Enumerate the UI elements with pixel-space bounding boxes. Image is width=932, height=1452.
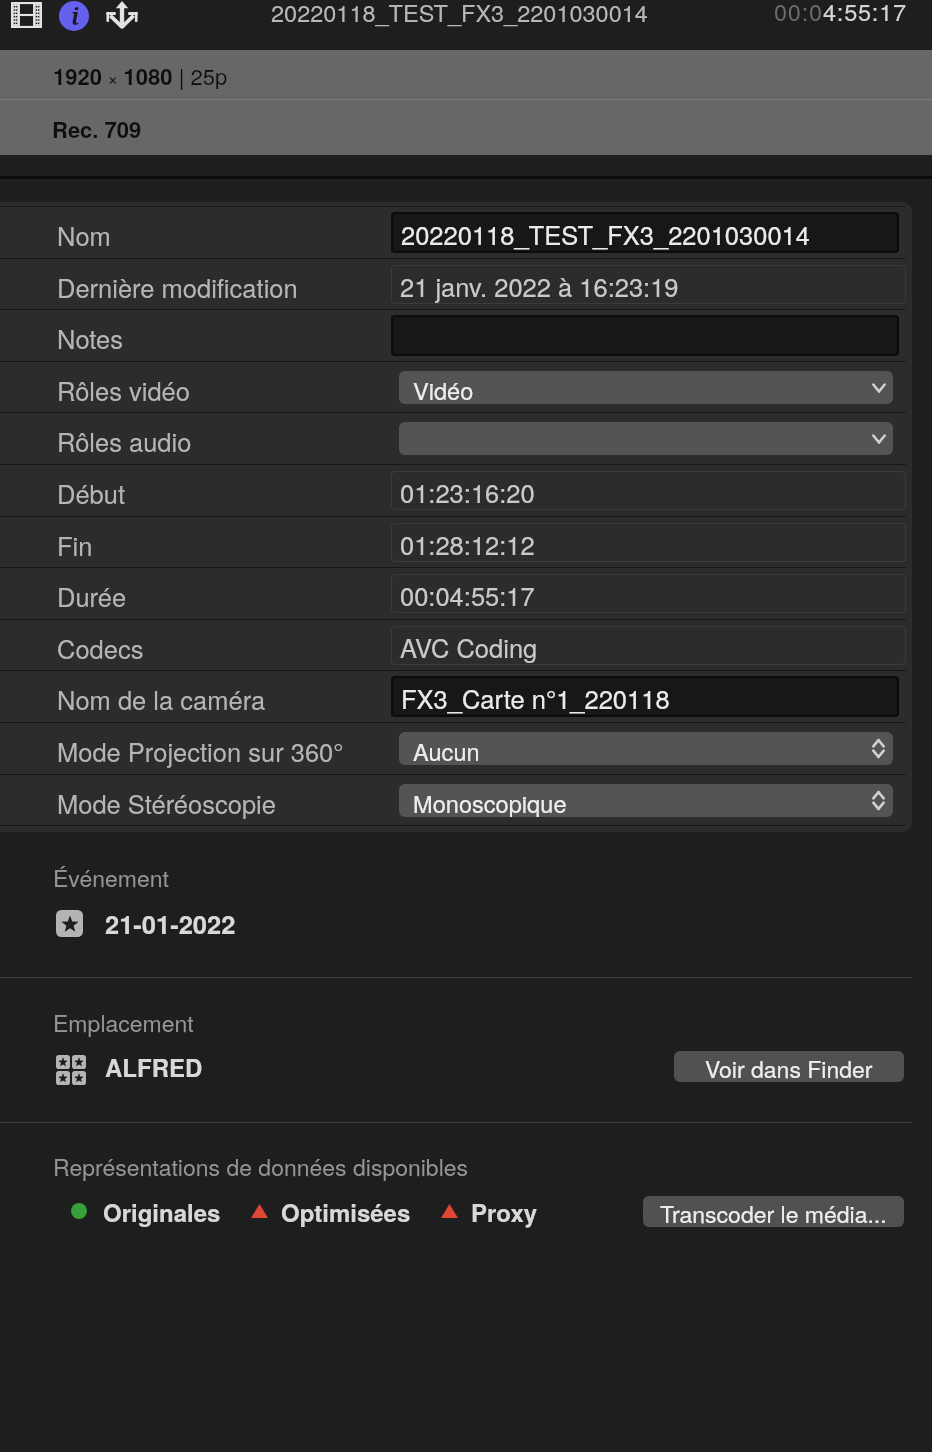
button[interactable]: ALFRED xyxy=(56,1049,203,1083)
staticText: Notes xyxy=(57,320,123,357)
staticText: i xyxy=(71,1,80,30)
staticText: Rec. 709 xyxy=(52,113,142,145)
staticText: Dernière modification xyxy=(57,269,298,306)
staticText: Nom de la caméra xyxy=(57,681,266,718)
staticText: 21 janv. 2022 à 16:23:19 xyxy=(400,268,679,305)
staticText: ALFRED xyxy=(105,1050,203,1084)
button[interactable]: Originales xyxy=(71,1194,221,1228)
staticText: Représentations de données disponibles xyxy=(53,1150,469,1183)
button[interactable]: Notes xyxy=(0,310,906,361)
staticText: 20220118_TEST_FX3_2201030014 xyxy=(271,0,648,29)
staticText: Aucun xyxy=(413,734,480,765)
button[interactable]: Durée xyxy=(0,568,906,619)
staticText: 01:23:16:20 xyxy=(400,474,535,511)
button[interactable]: 21-01-2022 xyxy=(56,905,236,942)
button[interactable]: Dernière modification xyxy=(0,259,906,309)
staticText: 21-01-2022 xyxy=(105,905,236,942)
staticText: 1920 × 1080 | 25p xyxy=(53,60,228,92)
staticText: AVC Coding xyxy=(400,629,538,666)
staticText: Originales xyxy=(103,1195,221,1229)
staticText: Voir dans Finder xyxy=(705,1052,873,1082)
button[interactable]: Info xyxy=(59,1,89,31)
staticText: Mode Stéréoscopie xyxy=(57,785,276,822)
staticText: Rôles vidéo xyxy=(57,372,190,409)
button[interactable]: Mode Stéréoscopie xyxy=(0,775,906,825)
button[interactable]: Video clip xyxy=(11,1,42,28)
button[interactable]: Fin xyxy=(0,517,906,567)
staticText: Fin xyxy=(57,527,93,564)
staticText: Monoscopique xyxy=(413,786,567,817)
staticText: Proxy xyxy=(471,1195,538,1229)
button[interactable]: Mode Projection sur 360° xyxy=(0,723,906,774)
button[interactable]: Proxy xyxy=(441,1194,538,1228)
staticText: FX3_Carte n°1_220118 xyxy=(401,680,670,717)
staticText: Mode Projection sur 360° xyxy=(57,733,344,770)
staticText: Nom xyxy=(57,217,111,254)
staticText: Emplacement xyxy=(53,1006,194,1039)
staticText: 00:04:55:17 xyxy=(774,0,907,28)
staticText: Transcoder le média... xyxy=(660,1197,887,1227)
button[interactable]: Codecs xyxy=(0,620,906,670)
staticText: Vidéo xyxy=(413,373,474,404)
button[interactable]: Voir dans Finder xyxy=(674,1051,904,1082)
button[interactable]: Optimisées xyxy=(251,1194,411,1228)
staticText: Début xyxy=(57,475,126,512)
staticText: Durée xyxy=(57,578,127,615)
staticText: Optimisées xyxy=(281,1195,411,1229)
button[interactable]: Rôles vidéo xyxy=(0,362,906,412)
button[interactable]: Début xyxy=(0,465,906,516)
button[interactable]: Nom xyxy=(0,207,906,258)
staticText: Événement xyxy=(53,861,169,894)
staticText: 20220118_TEST_FX3_2201030014 xyxy=(401,216,810,253)
button[interactable]: Transcoder le média... xyxy=(643,1196,904,1227)
staticText: 00:04:55:17 xyxy=(400,577,535,614)
button[interactable]: Nom de la caméra xyxy=(0,671,906,722)
button[interactable]: Share xyxy=(106,1,138,29)
button[interactable]: Rôles audio xyxy=(0,413,906,464)
staticText: Rôles audio xyxy=(57,423,192,460)
staticText: 01:28:12:12 xyxy=(400,526,535,563)
staticText: Codecs xyxy=(57,630,144,667)
